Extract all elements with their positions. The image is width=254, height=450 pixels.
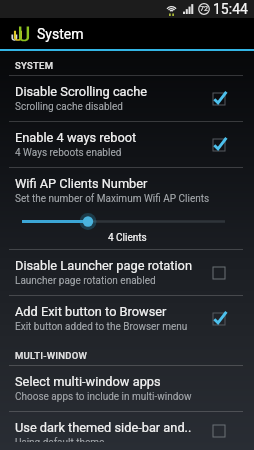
button[interactable]: Select multi-window apps bbox=[0, 366, 254, 412]
other: App icon bbox=[11, 24, 32, 44]
button[interactable]: Add Exit button to Browser bbox=[0, 296, 254, 341]
staticText: 4 Ways reboots enabled bbox=[15, 147, 122, 159]
staticText: Use dark themed side-bar and.. bbox=[15, 420, 192, 435]
staticText: Disable Scrolling cache bbox=[15, 84, 148, 99]
staticText: Exit button added to the Browser menu bbox=[15, 321, 188, 333]
staticText: Scrolling cache disabled bbox=[15, 101, 123, 113]
staticText: Disable Launcher page rotation bbox=[15, 258, 192, 273]
button[interactable]: Disable Launcher page rotation bbox=[0, 250, 254, 296]
staticText: Add Exit button to Browser bbox=[15, 304, 167, 319]
staticText: SYSTEM bbox=[15, 60, 54, 71]
staticText: MULTI-WINDOW bbox=[15, 350, 88, 361]
other: Signal strength bbox=[183, 4, 194, 14]
staticText: 4 Clients bbox=[108, 232, 147, 244]
button[interactable]: Wifi AP Clients Number bbox=[0, 168, 254, 250]
button[interactable]: Disable Scrolling cache bbox=[0, 76, 254, 122]
other: Unchecked bbox=[210, 422, 228, 440]
staticText: 15:44 bbox=[213, 1, 248, 17]
other: Checked bbox=[210, 90, 228, 108]
other: Battery 72 percent bbox=[198, 3, 210, 15]
staticText: Wifi AP Clients Number bbox=[15, 176, 148, 191]
staticText: 72 bbox=[200, 5, 208, 13]
staticText: Enable 4 ways reboot bbox=[15, 130, 137, 145]
button[interactable]: App icon bbox=[0, 18, 254, 49]
other: Max clients slider bbox=[0, 213, 254, 230]
other: Checked bbox=[210, 310, 228, 328]
other: Wi-Fi bbox=[166, 3, 177, 15]
other: Unchecked bbox=[210, 264, 228, 282]
staticText: System bbox=[37, 26, 84, 42]
other: Checked bbox=[210, 136, 228, 154]
staticText: Set the number of Maximum Wifi AP Client… bbox=[15, 193, 210, 205]
button[interactable]: Enable 4 ways reboot bbox=[0, 122, 254, 168]
button[interactable]: Use dark themed side-bar and.. bbox=[0, 412, 254, 450]
staticText: Launcher page rotation enabled bbox=[15, 275, 156, 287]
staticText: Using default theme bbox=[15, 437, 105, 442]
staticText: Choose apps to include in multi-window bbox=[15, 391, 192, 403]
staticText: Select multi-window apps bbox=[15, 374, 161, 389]
